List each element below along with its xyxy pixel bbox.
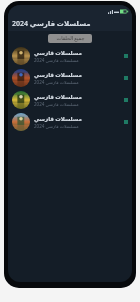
- staticText: مسلسلات فارسي: [34, 71, 82, 78]
- button[interactable]: مسلسلات فارسي: [8, 67, 132, 89]
- button[interactable]: مسلسلات فارسي: [8, 45, 132, 67]
- staticText: مسلسلات فارسي: [34, 115, 82, 122]
- staticText: مسلسلات فارسي 2024: [12, 19, 91, 29]
- button[interactable]: مسلسلات فارسي: [8, 89, 132, 111]
- staticText: مسلسلات فارسي 2024: [34, 123, 79, 129]
- staticText: مسلسلات فارسي 2024: [34, 101, 79, 107]
- button[interactable]: مسلسلات فارسي 2024: [8, 17, 132, 31]
- staticText: مسلسلات فارسي 2024: [34, 79, 79, 85]
- staticText: مسلسلات فارسي: [34, 93, 82, 100]
- staticText: مسلسلات فارسي 2024: [34, 57, 79, 63]
- staticText: جميع الحلقات: [56, 35, 85, 42]
- button[interactable]: جميع الحلقات: [48, 34, 92, 43]
- staticText: مسلسلات فارسي: [34, 49, 82, 56]
- button[interactable]: مسلسلات فارسي: [8, 111, 132, 133]
